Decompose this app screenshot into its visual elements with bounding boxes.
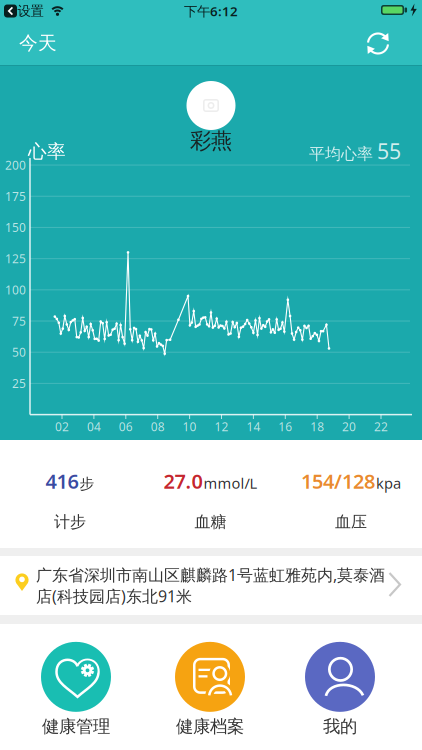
button[interactable]: 健康管理 [41, 642, 111, 737]
staticText: 200 [5, 157, 26, 173]
staticText: 健康档案 [176, 716, 244, 737]
staticText: 416 [45, 468, 78, 494]
staticText: 18 [310, 418, 324, 434]
staticText: 血糖 [194, 512, 226, 532]
staticText: 计步 [54, 512, 86, 532]
button[interactable]: 广东省深圳市南山区麒麟路1号蓝虹雅苑内,莫泰酒店(科技园店)东北91米 [0, 556, 422, 615]
staticText: kpa [376, 473, 401, 493]
staticText: 100 [5, 282, 26, 298]
staticText: 55 [377, 137, 401, 165]
staticText: 02 [55, 418, 69, 434]
staticText: 50 [12, 344, 26, 360]
staticText: 下午6:12 [184, 2, 238, 20]
staticText: 75 [12, 313, 26, 329]
staticText: 我的 [323, 716, 357, 737]
staticText: 12 [214, 418, 228, 434]
staticText: 平均心率 [309, 144, 373, 164]
button[interactable]: 健康档案 [175, 642, 245, 737]
staticText: 广东省深圳市南山区麒麟路1号蓝虹雅苑内,莫泰酒店(科技园店)东北91米 [36, 564, 385, 607]
staticText: mmol/L [203, 473, 257, 493]
staticText: 22 [374, 418, 388, 434]
staticText: 彩燕 [190, 128, 232, 154]
staticText: 175 [5, 188, 26, 204]
staticText: 150 [5, 219, 26, 235]
staticText: 20 [342, 418, 356, 434]
staticText: 设置 [17, 3, 43, 19]
staticText: 154/128 [301, 468, 375, 494]
staticText: 27.0 [163, 468, 202, 494]
staticText: 步 [79, 475, 94, 493]
staticText: 16 [278, 418, 292, 434]
staticText: 血压 [335, 512, 367, 532]
staticText: 健康管理 [42, 716, 110, 737]
staticText: 14 [246, 418, 260, 434]
staticText: 今天 [19, 31, 57, 54]
button[interactable]: 我的 [305, 642, 375, 737]
staticText: 08 [151, 418, 165, 434]
staticText: 10 [183, 418, 197, 434]
staticText: 06 [119, 418, 133, 434]
staticText: 125 [5, 251, 26, 267]
staticText: 25 [12, 375, 26, 391]
button[interactable]: 刷新 [362, 27, 394, 59]
staticText: 心率 [28, 140, 66, 163]
button[interactable]: 更换头像 [186, 81, 235, 130]
staticText: 04 [87, 418, 101, 434]
